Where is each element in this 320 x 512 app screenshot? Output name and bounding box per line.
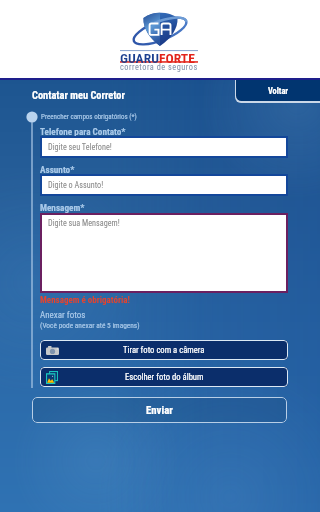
button[interactable]: Escolher foto do álbum: [40, 367, 288, 387]
staticText: Mensagem é obrigatória!: [40, 295, 130, 306]
button[interactable]: Digite o Assunto!: [40, 174, 288, 196]
staticText: Enviar: [146, 404, 173, 417]
staticText: corretora de seguros: [120, 62, 198, 72]
staticText: Mensagem*: [40, 202, 85, 213]
staticText: GUARU: [120, 50, 159, 66]
staticText: (Você pode anexar até 5 imagens): [40, 321, 140, 330]
staticText: Voltar: [268, 86, 289, 96]
button[interactable]: Enviar: [32, 397, 287, 423]
button[interactable]: Digite sua Mensagem!: [40, 213, 288, 293]
staticText: Assunto*: [40, 164, 75, 175]
button[interactable]: Voltar: [236, 80, 320, 101]
staticText: Digite sua Mensagem!: [48, 218, 120, 228]
staticText: Contatar meu Corretor: [32, 89, 125, 101]
staticText: Digite seu Telefone!: [48, 142, 112, 152]
staticText: Anexar fotos: [40, 310, 86, 321]
staticText: Tirar foto com a câmera: [123, 345, 205, 355]
button[interactable]: Tirar foto com a câmera: [40, 340, 288, 360]
button[interactable]: Digite seu Telefone!: [40, 136, 288, 158]
staticText: Escolher foto do álbum: [125, 372, 204, 382]
staticText: FORTE: [159, 50, 195, 66]
staticText: Telefone para Contato*: [40, 126, 126, 137]
staticText: Digite o Assunto!: [48, 180, 104, 190]
staticText: Preencher campos obrigatórios (*): [41, 113, 137, 121]
